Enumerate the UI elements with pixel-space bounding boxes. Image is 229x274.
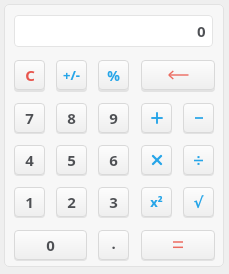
button[interactable]: 3 [98, 187, 129, 217]
button[interactable]: 0 [14, 15, 213, 47]
button[interactable]: 9 [98, 103, 129, 133]
button[interactable] [141, 103, 172, 133]
staticText: 8 [67, 108, 76, 128]
button[interactable]: 5 [56, 145, 87, 175]
button[interactable]: 7 [14, 103, 45, 133]
staticText: 5 [67, 150, 76, 170]
staticText: 0 [46, 235, 55, 255]
button[interactable]: x² [141, 187, 172, 217]
staticText: . [111, 233, 116, 253]
button[interactable]: 6 [98, 145, 129, 175]
button[interactable]: 2 [56, 187, 87, 217]
button[interactable]: . [98, 230, 129, 260]
button[interactable] [183, 145, 214, 175]
staticText: 7 [25, 108, 34, 128]
button[interactable]: √ [183, 187, 214, 217]
button[interactable]: 4 [14, 145, 45, 175]
button[interactable]: 1 [14, 187, 45, 217]
button[interactable] [141, 230, 215, 260]
staticText: x² [150, 193, 163, 211]
button[interactable] [183, 103, 214, 133]
button[interactable] [141, 145, 172, 175]
staticText: 0 [197, 21, 206, 41]
staticText: 4 [25, 150, 34, 170]
staticText: 2 [67, 192, 76, 212]
button[interactable] [141, 60, 215, 90]
staticText: % [107, 66, 120, 85]
staticText: +/- [63, 66, 80, 84]
button[interactable]: 0 [14, 230, 87, 260]
staticText: 9 [109, 108, 118, 128]
button[interactable]: +/- [56, 60, 87, 90]
staticText: 3 [109, 192, 118, 212]
staticText: 1 [25, 192, 34, 212]
staticText: √ [193, 194, 204, 211]
staticText: C [25, 65, 35, 85]
button[interactable]: % [98, 60, 129, 90]
staticText: 6 [109, 150, 118, 170]
button[interactable]: 8 [56, 103, 87, 133]
button[interactable]: C [14, 60, 45, 90]
